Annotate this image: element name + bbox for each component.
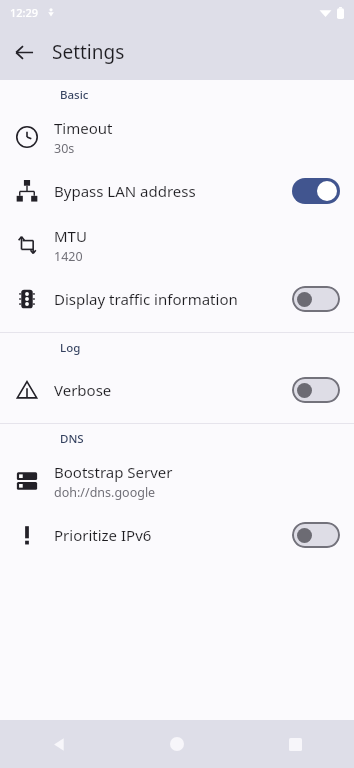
button[interactable]: Recent apps <box>236 720 354 768</box>
staticText: Verbose <box>54 380 112 400</box>
staticText: 1420 <box>54 248 83 265</box>
button[interactable] <box>292 377 340 403</box>
staticText: Prioritize IPv6 <box>54 525 152 545</box>
staticText: Display traffic information <box>54 289 238 309</box>
button[interactable] <box>292 286 340 312</box>
staticText: 30s <box>54 140 75 157</box>
staticText: Log <box>60 340 81 356</box>
button[interactable]: MTU <box>0 218 354 272</box>
button[interactable]: Home <box>153 720 201 768</box>
staticText: Timeout <box>54 118 113 138</box>
staticText: Bypass LAN address <box>54 181 196 201</box>
staticText: Settings <box>52 39 125 65</box>
button[interactable]: Timeout <box>0 110 354 164</box>
button[interactable] <box>292 522 340 548</box>
staticText: doh://dns.google <box>54 484 156 501</box>
staticText: MTU <box>54 226 87 246</box>
staticText: 12:29 <box>10 5 39 20</box>
button[interactable]: Back <box>8 36 40 68</box>
staticText: Bootstrap Server <box>54 462 173 482</box>
button[interactable]: Bootstrap Server <box>0 454 354 508</box>
button[interactable] <box>292 178 340 204</box>
button[interactable]: Bypass LAN address <box>0 164 354 218</box>
button[interactable]: Display traffic information <box>0 272 354 326</box>
button[interactable]: Prioritize IPv6 <box>0 508 354 562</box>
staticText: Basic <box>60 87 89 103</box>
button[interactable]: Verbose <box>0 363 354 417</box>
staticText: DNS <box>60 431 84 447</box>
